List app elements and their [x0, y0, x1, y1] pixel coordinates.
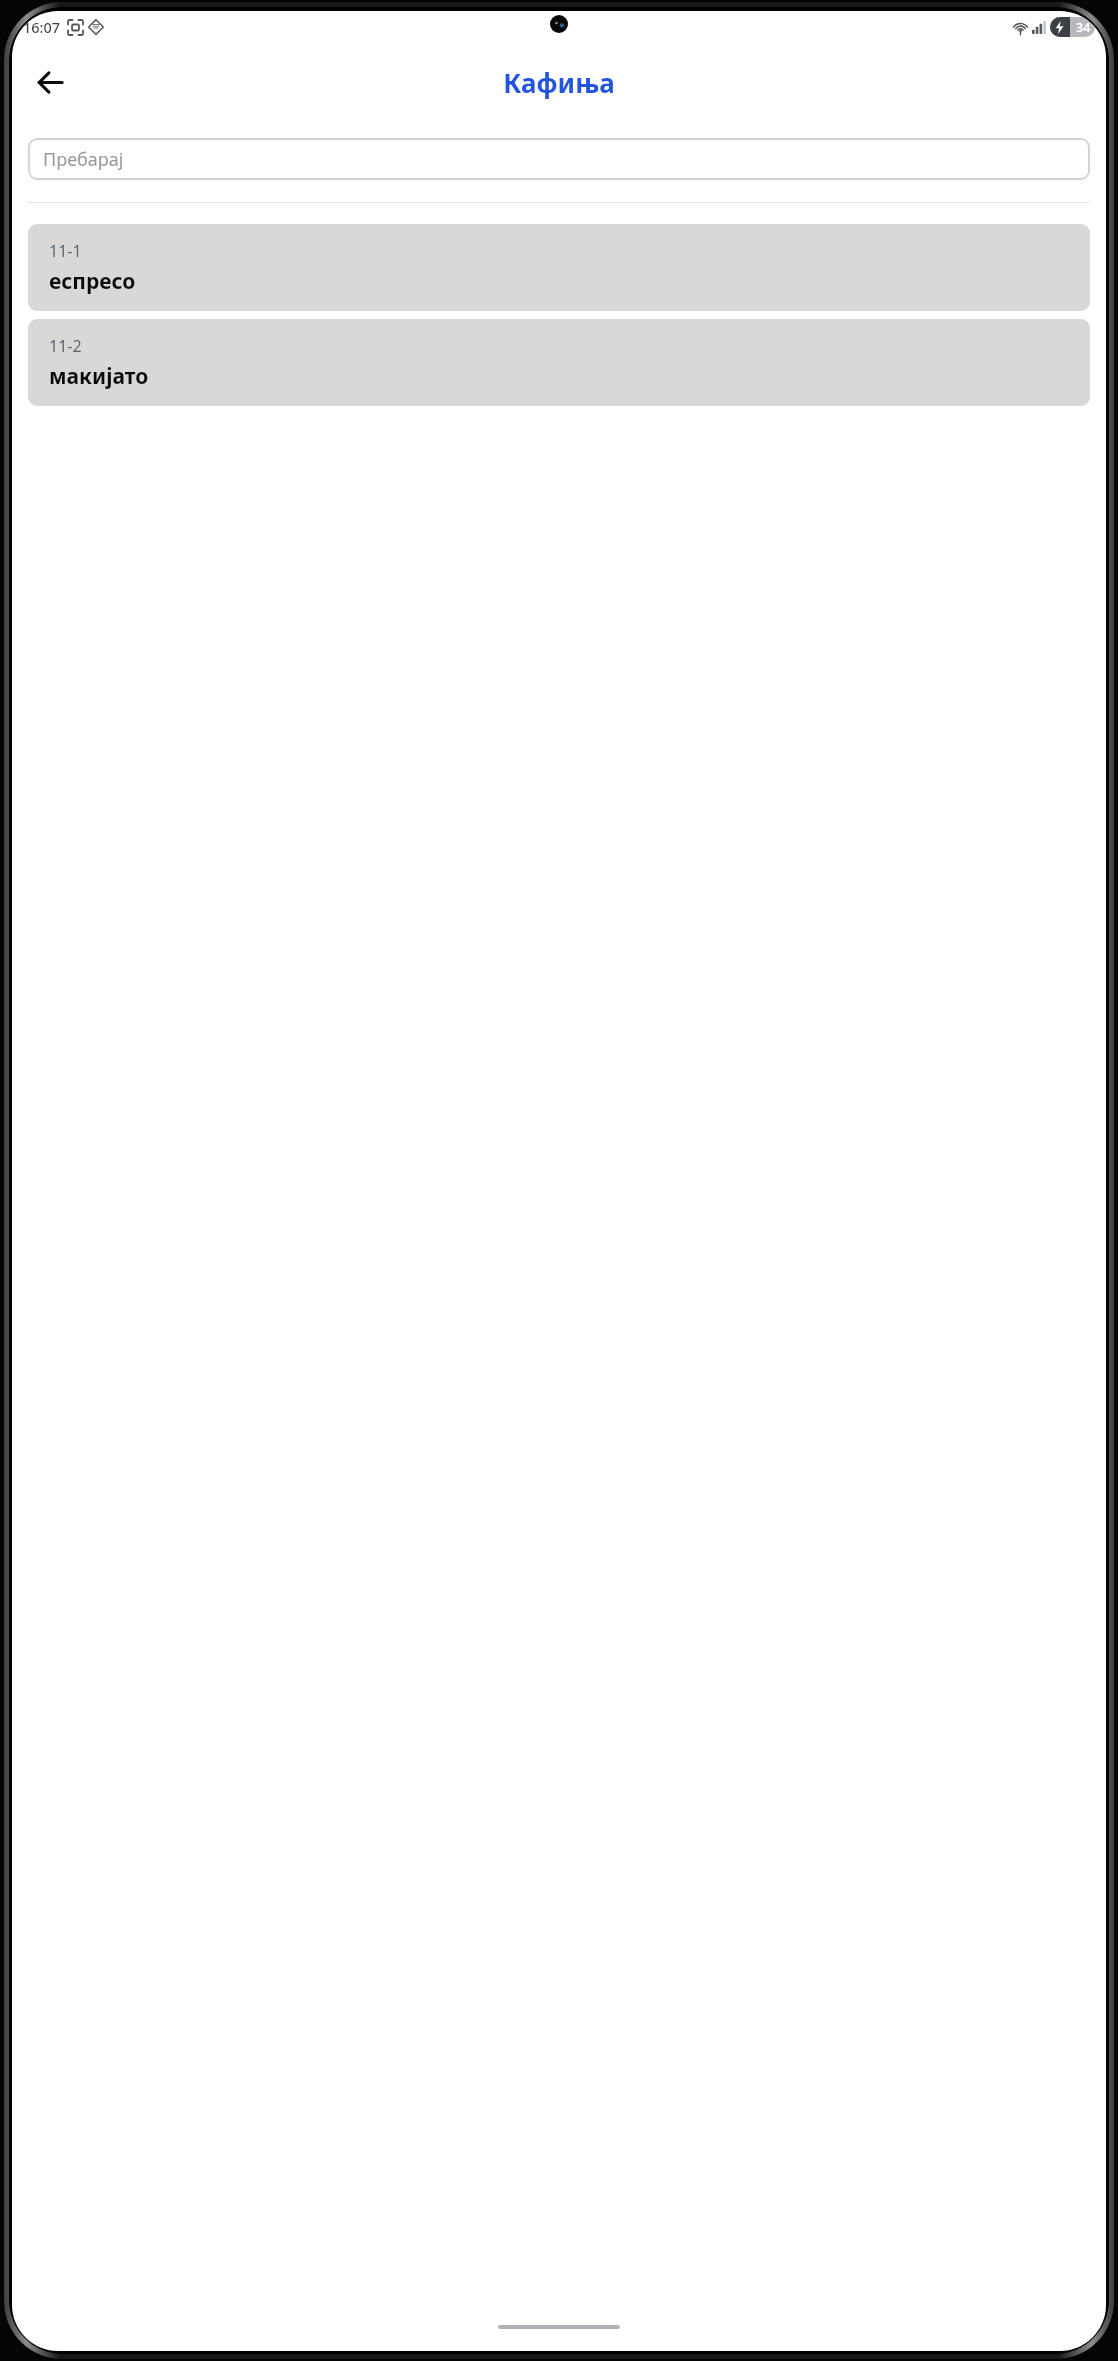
staticText: 11-1	[49, 240, 82, 262]
staticText: Кафиња	[503, 65, 615, 100]
button[interactable]: Back	[26, 58, 74, 106]
staticText: 11-2	[49, 335, 82, 357]
button[interactable]: 11-2	[28, 319, 1090, 406]
staticText: Пребарај	[43, 147, 124, 172]
staticText: макијато	[49, 362, 149, 391]
staticText: еспресо	[49, 267, 136, 296]
button[interactable]: Пребарај	[28, 138, 1090, 180]
staticText: 16:07	[23, 17, 61, 37]
staticText: 34	[1076, 19, 1091, 36]
button[interactable]: 11-1	[28, 224, 1090, 311]
